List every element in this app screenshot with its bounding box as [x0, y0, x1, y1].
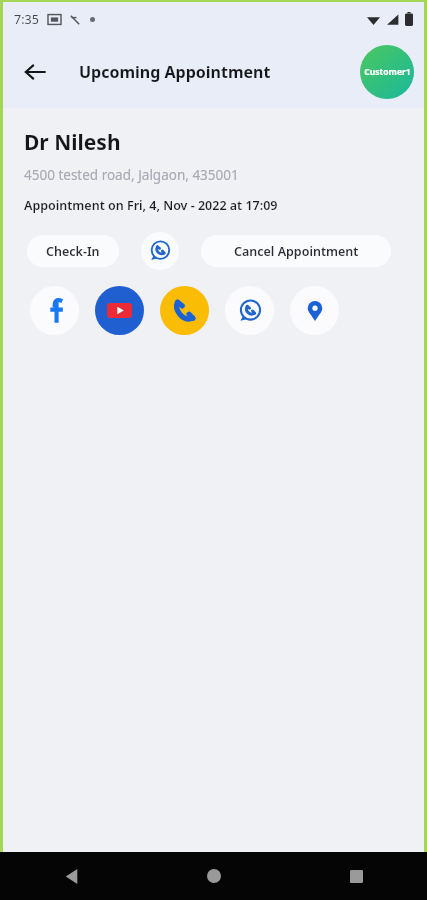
button[interactable]: WhatsApp [141, 232, 179, 270]
staticText: Upcoming Appointment [79, 61, 271, 83]
button[interactable]: YouTube [95, 286, 144, 335]
staticText: Check-In [46, 243, 100, 260]
button[interactable]: Check-In [27, 235, 119, 267]
button[interactable]: Customer1 [360, 45, 414, 99]
button[interactable]: Home [194, 856, 234, 896]
staticText: 7:35 [14, 11, 39, 28]
button[interactable]: Facebook [30, 286, 79, 335]
button[interactable]: Location [290, 286, 339, 335]
button[interactable]: Cancel Appointment [201, 235, 391, 267]
staticText: Customer1 [364, 66, 411, 78]
staticText: 4500 tested road, Jalgaon, 435001 [24, 166, 239, 184]
staticText: Appointment on Fri, 4, Nov - 2022 at 17:… [24, 197, 278, 214]
button[interactable]: Back [52, 856, 92, 896]
button[interactable]: Call [160, 286, 209, 335]
button[interactable]: Back [13, 50, 57, 94]
staticText: Cancel Appointment [234, 243, 359, 260]
button[interactable]: WhatsApp [225, 286, 274, 335]
staticText: Dr Nilesh [24, 128, 121, 157]
button[interactable]: Recent apps [336, 856, 376, 896]
